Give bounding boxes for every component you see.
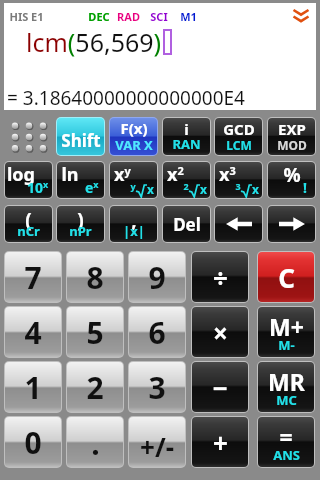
staticText: lcm(56,569) [26, 25, 162, 59]
button[interactable]: x2 [163, 162, 210, 198]
button[interactable]: Expand [292, 7, 310, 25]
staticText: − [212, 370, 228, 405]
staticText: % [283, 162, 301, 188]
staticText: Shift [61, 129, 101, 152]
button[interactable]: 7 [5, 252, 61, 302]
staticText: 1 [24, 367, 42, 408]
button[interactable]: 6 [129, 307, 185, 357]
staticText: 9 [148, 257, 166, 298]
button[interactable]: x3 [215, 162, 262, 198]
button[interactable]: MR [258, 362, 314, 412]
button[interactable]: GCD [215, 118, 262, 155]
button[interactable]: 9 [129, 252, 185, 302]
button[interactable]: i [163, 118, 210, 155]
staticText: M1 [180, 9, 197, 24]
button[interactable]: + [192, 417, 248, 467]
staticText: ! [303, 178, 307, 197]
staticText: ) [77, 207, 84, 233]
staticText: ÷ [213, 260, 228, 295]
staticText: , [131, 207, 137, 233]
staticText: . [91, 423, 100, 464]
button[interactable]: × [192, 307, 248, 357]
staticText: HIS E1 [9, 9, 44, 24]
staticText: ln [61, 162, 79, 187]
button[interactable]: 4 [5, 307, 61, 357]
button[interactable]: 3 [129, 362, 185, 412]
staticText: 10x [27, 178, 49, 197]
button[interactable]: EXP [268, 118, 315, 155]
staticText: M- [278, 336, 295, 354]
staticText: ( [25, 207, 32, 233]
button[interactable]: Del [163, 206, 210, 242]
staticText: xy [114, 162, 131, 187]
button[interactable]: xy [110, 162, 157, 198]
button[interactable]: Keypad [6, 117, 52, 156]
staticText: VAR X [115, 136, 153, 154]
staticText: = [279, 421, 293, 452]
button[interactable]: 2 [67, 362, 123, 412]
staticText: RAD [117, 9, 140, 24]
button[interactable]: +/- [129, 417, 185, 467]
staticText: x3 [219, 162, 236, 187]
button[interactable]: F(x) [110, 118, 157, 155]
staticText: x [200, 181, 207, 197]
staticText: 3 [148, 367, 166, 408]
staticText: + [213, 425, 228, 460]
staticText: nCr [17, 222, 40, 240]
button[interactable]: Right [268, 206, 315, 242]
button[interactable]: Shift [57, 118, 104, 155]
staticText: = 3.18640000000000000E4 [7, 85, 245, 110]
staticText: x2 [167, 162, 184, 187]
button[interactable]: M+ [258, 307, 314, 357]
button[interactable]: ) [57, 206, 104, 242]
staticText: x [252, 181, 259, 197]
button[interactable]: C [258, 252, 314, 302]
staticText: C [278, 260, 295, 295]
button[interactable]: 8 [67, 252, 123, 302]
button[interactable]: Left [215, 206, 262, 242]
button[interactable]: ln [57, 162, 104, 198]
button[interactable]: 1 [5, 362, 61, 412]
staticText: SCI [150, 9, 168, 24]
staticText: 6 [148, 312, 166, 353]
button[interactable]: 0 [5, 417, 61, 467]
staticText: 2 [86, 367, 104, 408]
button[interactable]: ÷ [192, 252, 248, 302]
staticText: +/- [140, 429, 174, 464]
staticText: nPr [69, 222, 92, 240]
staticText: 7 [24, 257, 42, 298]
staticText: 4 [24, 312, 42, 353]
staticText: × [213, 315, 228, 350]
staticText: x [147, 181, 154, 197]
staticText: RAN [172, 135, 201, 153]
staticText: y [130, 180, 136, 192]
button[interactable]: , [110, 206, 157, 242]
staticText: 2 [183, 180, 189, 192]
staticText: log [7, 162, 35, 187]
button[interactable]: log [5, 162, 52, 198]
button[interactable]: . [67, 417, 123, 467]
staticText: MR [268, 366, 305, 397]
button[interactable]: − [192, 362, 248, 412]
button[interactable]: % [268, 162, 315, 198]
staticText: 3 [235, 180, 241, 192]
staticText: 8 [86, 257, 104, 298]
staticText: ex [85, 178, 99, 197]
staticText: 5 [86, 312, 104, 353]
staticText: F(x) [120, 118, 148, 138]
staticText: Del [173, 213, 201, 236]
staticText: MOD [277, 137, 307, 153]
staticText: M+ [269, 311, 304, 342]
button[interactable]: = [258, 417, 314, 467]
button[interactable]: 5 [67, 307, 123, 357]
staticText: DEC [88, 9, 110, 24]
button[interactable]: ( [5, 206, 52, 242]
button[interactable]: HIS E1 [4, 3, 316, 110]
staticText: MC [276, 391, 297, 409]
staticText: ANS [273, 446, 300, 464]
staticText: LCM [226, 137, 252, 153]
staticText: i [184, 119, 189, 139]
staticText: 0 [24, 422, 42, 463]
staticText: EXP [278, 119, 306, 139]
staticText: |x| [123, 222, 145, 240]
